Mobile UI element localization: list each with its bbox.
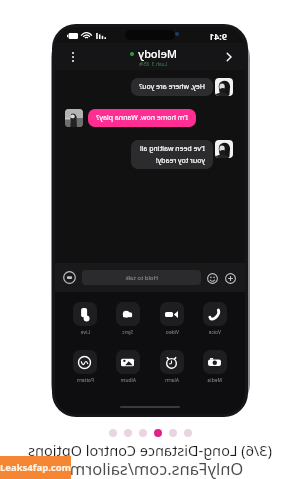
button[interactable]: I've been waiting all your toy ready!	[131, 140, 213, 169]
staticText: Sync	[122, 329, 133, 336]
staticText: (3/6) Long-Distance Control Options	[0, 440, 300, 460]
button[interactable]: Emoji	[206, 271, 220, 285]
staticText: Video	[165, 329, 179, 336]
button[interactable]: Sync	[116, 302, 140, 336]
button[interactable]: Video	[160, 302, 184, 336]
staticText: I've been waiting all your toy ready!	[139, 144, 205, 165]
staticText: 9:41	[209, 30, 227, 42]
button[interactable]: Voice	[203, 302, 227, 336]
staticText: Melody	[138, 46, 177, 61]
staticText: Media	[207, 377, 222, 384]
button[interactable]: Album	[116, 350, 140, 384]
button[interactable]: Hey, where are you?	[131, 78, 213, 96]
button[interactable]: Alarm	[160, 350, 184, 384]
staticText: Pattern	[76, 377, 94, 384]
staticText: I'm home now. Wanna play?	[96, 113, 188, 123]
staticText: Lush 3 85%	[139, 61, 167, 68]
button[interactable]: Hold to talk	[82, 270, 201, 285]
button[interactable]: Keyboard	[62, 270, 77, 285]
staticText: Leaks4fap.com	[0, 461, 71, 474]
button[interactable]: Live	[73, 302, 97, 336]
button[interactable]: Media	[203, 350, 227, 384]
button[interactable]: Back	[217, 45, 241, 69]
staticText: Live	[80, 329, 90, 336]
staticText: Hold to talk	[125, 274, 158, 282]
button[interactable]: More options	[61, 45, 85, 69]
staticText: Voice	[208, 329, 221, 336]
button[interactable]: Add	[224, 271, 238, 285]
staticText: OnlyFans.com/sailorm...	[0, 457, 300, 479]
button[interactable]: Pattern	[73, 350, 97, 384]
staticText: Alarm	[164, 377, 179, 384]
staticText: Album	[120, 377, 136, 384]
staticText: Hey, where are you?	[139, 82, 205, 92]
button[interactable]: I'm home now. Wanna play?	[88, 109, 196, 127]
